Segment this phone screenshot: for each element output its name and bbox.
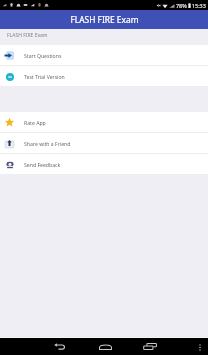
staticText: Rate App — [24, 119, 46, 126]
button[interactable]: Start Questions — [0, 45, 208, 65]
staticText: Test Trial Version — [24, 73, 65, 80]
button[interactable]: Recent apps — [134, 338, 166, 355]
staticText: FLASH FIRE Exam — [70, 14, 139, 25]
staticText: 15:33 — [192, 2, 206, 9]
button[interactable]: Rate App — [0, 112, 208, 132]
staticText: Send Feedback — [24, 161, 61, 168]
staticText: 78% — [176, 2, 187, 9]
staticText: Start Questions — [24, 52, 62, 59]
button[interactable]: Back — [43, 338, 75, 355]
button[interactable]: Send Feedback — [0, 154, 208, 174]
button[interactable]: More options — [196, 340, 204, 354]
button[interactable]: Share with a Friend — [0, 133, 208, 153]
button[interactable]: Home — [89, 338, 121, 355]
staticText: Share with a Friend — [24, 140, 71, 147]
button[interactable]: Test Trial Version — [0, 66, 208, 86]
staticText: FLASH FIRE Exam — [7, 32, 48, 39]
